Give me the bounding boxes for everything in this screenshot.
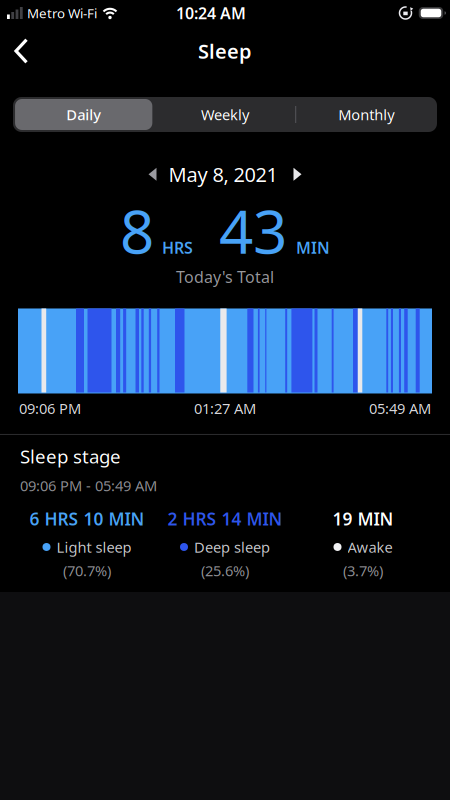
staticText: (70.7%) <box>63 561 111 580</box>
staticText: HRS <box>162 237 193 258</box>
staticText: 09:06 PM <box>19 398 81 418</box>
staticText: Deep sleep <box>194 537 270 557</box>
staticText: 43 <box>219 191 287 270</box>
staticText: Metro Wi-Fi <box>27 4 97 22</box>
button[interactable]: Daily <box>13 97 154 132</box>
staticText: 09:06 PM - 05:49 AM <box>20 476 157 495</box>
staticText: MIN <box>296 237 330 258</box>
staticText: 01:27 AM <box>194 398 256 418</box>
staticText: Today's Total <box>176 266 274 287</box>
staticText: Sleep stage <box>20 444 121 469</box>
staticText: Monthly <box>338 105 394 124</box>
button[interactable]: Monthly <box>296 105 437 124</box>
staticText: 6 HRS 10 MIN <box>29 507 144 530</box>
button[interactable]: Weekly <box>154 105 296 124</box>
staticText: (3.7%) <box>343 561 383 580</box>
staticText: Awake <box>347 537 392 557</box>
staticText: 19 MIN <box>332 507 393 530</box>
staticText: Weekly <box>201 105 249 124</box>
button[interactable]: Previous day <box>148 168 156 181</box>
button[interactable]: Back <box>0 38 29 64</box>
staticText: 10:24 AM <box>176 2 246 24</box>
staticText: Light sleep <box>56 537 131 557</box>
staticText: 05:49 AM <box>369 398 431 418</box>
button[interactable]: Next day <box>293 168 301 181</box>
staticText: 2 HRS 14 MIN <box>167 507 282 530</box>
staticText: Sleep <box>198 38 252 64</box>
staticText: May 8, 2021 <box>168 161 277 188</box>
staticText: Daily <box>66 105 101 124</box>
staticText: 8 <box>120 191 154 270</box>
staticText: (25.6%) <box>201 561 249 580</box>
